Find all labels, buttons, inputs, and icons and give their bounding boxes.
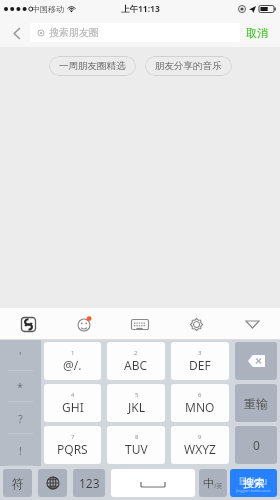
button[interactable]: Back	[6, 22, 28, 44]
button[interactable]: 搜索朋友圈	[30, 23, 240, 42]
staticText: !	[19, 443, 22, 458]
button[interactable]: 0	[235, 426, 277, 464]
button[interactable]: 搜索	[230, 469, 277, 497]
button[interactable]: Settings	[168, 308, 224, 340]
staticText: @/.	[63, 357, 82, 373]
button[interactable]: 中	[199, 469, 227, 497]
button[interactable]: 一周朋友圈精选	[49, 56, 136, 76]
staticText: MNO	[185, 399, 215, 415]
staticText: WXYZ	[184, 441, 216, 457]
button[interactable]: 1	[44, 342, 101, 380]
staticText: ?	[18, 411, 23, 426]
button[interactable]: Emoji	[56, 308, 112, 340]
button[interactable]: 5	[107, 384, 165, 422]
staticText: 符	[12, 476, 24, 491]
button[interactable]: 8	[107, 426, 165, 464]
staticText: ABC	[124, 357, 148, 373]
staticText: Baidu	[239, 474, 268, 488]
button[interactable]: 重输	[235, 384, 277, 422]
staticText: 6	[198, 391, 202, 399]
button[interactable]: 9	[171, 426, 229, 464]
staticText: TUV	[125, 441, 148, 457]
staticText: 8	[135, 433, 139, 441]
staticText: 1	[71, 349, 75, 357]
staticText: /英	[214, 482, 223, 490]
staticText: *	[17, 379, 24, 394]
staticText: DEF	[189, 357, 211, 373]
button[interactable]: Language	[38, 469, 67, 497]
staticText: JKL	[128, 399, 145, 415]
staticText: jingyan.baidu.com	[236, 488, 271, 493]
button[interactable]: Backspace	[235, 342, 277, 380]
staticText: 朋友分享的音乐	[155, 60, 222, 72]
staticText: 中	[203, 476, 214, 490]
button[interactable]: *	[0, 371, 41, 402]
staticText: 9	[198, 433, 202, 441]
staticText: 取消	[246, 26, 268, 40]
staticText: 重输	[244, 396, 268, 411]
button[interactable]: 取消	[240, 22, 274, 44]
button[interactable]: Hide keyboard	[224, 308, 280, 340]
staticText: 3	[198, 349, 202, 357]
button[interactable]: Keyboard layout	[112, 308, 168, 340]
staticText: 上午11:13	[121, 3, 160, 15]
button[interactable]: 朋友分享的音乐	[145, 56, 232, 76]
staticText: 5	[135, 391, 139, 399]
staticText: 一周朋友圈精选	[59, 60, 126, 72]
staticText: GHI	[62, 399, 84, 415]
staticText: 中国移动	[32, 4, 64, 14]
button[interactable]: 3	[171, 342, 229, 380]
staticText: PQRS	[57, 441, 88, 457]
button[interactable]: Space	[111, 469, 195, 497]
button[interactable]: 6	[171, 384, 229, 422]
staticText: 搜索	[243, 476, 265, 490]
button[interactable]: ?	[0, 402, 41, 434]
button[interactable]: 4	[44, 384, 101, 422]
button[interactable]: 2	[107, 342, 165, 380]
staticText: 123	[79, 475, 100, 491]
staticText: 2	[134, 349, 138, 357]
button[interactable]: Sogou input method	[0, 308, 56, 340]
button[interactable]: 7	[44, 426, 101, 464]
button[interactable]: 符	[3, 469, 32, 497]
button[interactable]: 123	[73, 469, 105, 497]
staticText: 0	[253, 437, 260, 453]
staticText: '	[19, 348, 22, 363]
button[interactable]: !	[0, 434, 41, 466]
staticText: 搜索朋友圈	[49, 26, 99, 39]
staticText: 4	[71, 391, 75, 399]
staticText: 7	[71, 433, 75, 441]
